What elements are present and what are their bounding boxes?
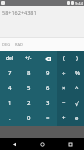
staticText: 5 [27, 84, 31, 92]
staticText: RAD [15, 42, 23, 47]
button[interactable]: e [70, 111, 84, 126]
button[interactable]: = [38, 111, 57, 126]
staticText: √ [75, 100, 79, 107]
button[interactable]: ^ [70, 81, 84, 96]
button[interactable]: RAD [14, 42, 24, 47]
button[interactable]: Back [7, 138, 21, 150]
staticText: 2 [27, 99, 31, 107]
button[interactable]: 1 [0, 96, 19, 111]
staticText: ( [63, 54, 65, 62]
button[interactable]: Recents [63, 138, 77, 150]
staticText: + [62, 114, 66, 122]
staticText: 3 [46, 99, 50, 107]
staticText: − [62, 99, 66, 107]
button[interactable]: 7 [0, 66, 19, 81]
button[interactable]: 6 [38, 81, 57, 96]
staticText: % [75, 69, 80, 77]
staticText: . [9, 114, 11, 122]
staticText: 58+162+4381 [2, 9, 37, 16]
button[interactable]: − [57, 96, 70, 111]
staticText: = [46, 114, 50, 122]
button[interactable]: 5 [19, 81, 38, 96]
staticText: 9 [46, 69, 50, 77]
button[interactable]: 8 [19, 66, 38, 81]
button[interactable]: % [70, 66, 84, 81]
button[interactable]: Home [35, 138, 49, 150]
button[interactable]: 9 [38, 66, 57, 81]
staticText: 9:44 [75, 1, 83, 6]
button[interactable]: 4 [0, 81, 19, 96]
button[interactable]: 2 [19, 96, 38, 111]
button[interactable]: Backspace [38, 51, 57, 66]
button[interactable]: ) [70, 51, 84, 66]
button[interactable]: del [0, 51, 19, 66]
button[interactable]: . [0, 111, 19, 126]
staticText: ) [76, 54, 78, 62]
button[interactable]: ( [57, 51, 70, 66]
button[interactable]: DEG [1, 42, 12, 47]
staticText: × [62, 84, 66, 92]
staticText: ^ [75, 84, 79, 92]
staticText: del [6, 55, 14, 62]
button[interactable]: +/- [19, 51, 38, 66]
staticText: 1 [8, 99, 12, 107]
button[interactable]: × [57, 81, 70, 96]
button[interactable]: 0 [19, 111, 38, 126]
staticText: 4 [8, 84, 12, 92]
staticText: 8 [27, 69, 31, 77]
staticText: e [75, 114, 79, 122]
button[interactable]: 3 [38, 96, 57, 111]
staticText: DEG [2, 42, 11, 47]
button[interactable]: + [57, 111, 70, 126]
staticText: +/- [25, 55, 32, 62]
staticText: 0 [27, 114, 31, 122]
button[interactable]: ÷ [57, 66, 70, 81]
staticText: 6 [46, 84, 50, 92]
staticText: 7 [8, 69, 12, 77]
button[interactable]: √ [70, 96, 84, 111]
staticText: ÷ [62, 69, 66, 77]
